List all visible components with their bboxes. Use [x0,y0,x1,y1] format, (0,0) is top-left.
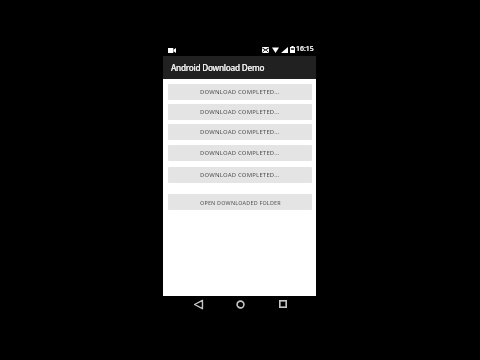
button[interactable]: DOWNLOAD COMPLETED... [168,104,312,120]
button[interactable]: Back [186,292,210,316]
button[interactable]: Android Download Demo [163,56,316,79]
staticText: DOWNLOAD COMPLETED... [200,108,280,116]
staticText: DOWNLOAD COMPLETED... [200,171,280,179]
button[interactable]: OPEN DOWNLOADED FOLDER [168,194,312,210]
staticText: Android Download Demo [171,62,265,73]
button[interactable]: Recent apps [271,292,295,316]
button[interactable]: Home [228,292,252,316]
button[interactable]: DOWNLOAD COMPLETED... [168,145,312,161]
staticText: OPEN DOWNLOADED FOLDER [200,199,281,206]
staticText: DOWNLOAD COMPLETED... [200,128,280,136]
button[interactable]: DOWNLOAD COMPLETED... [168,124,312,140]
button[interactable]: DOWNLOAD COMPLETED... [168,167,312,183]
button[interactable]: DOWNLOAD COMPLETED... [168,84,312,100]
staticText: DOWNLOAD COMPLETED... [200,88,280,96]
staticText: 16:15 [296,44,314,53]
staticText: DOWNLOAD COMPLETED... [200,149,280,157]
